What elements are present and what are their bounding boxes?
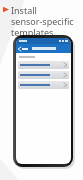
staticText: Install sensor-specific templates xyxy=(11,4,74,38)
button[interactable]: Configure a new feed xyxy=(18,81,69,89)
button[interactable]: Back xyxy=(16,44,34,53)
other: Bullet xyxy=(3,6,9,13)
button[interactable]: Select sensor configuration xyxy=(18,61,69,69)
button[interactable]: Install a new device xyxy=(18,71,69,79)
